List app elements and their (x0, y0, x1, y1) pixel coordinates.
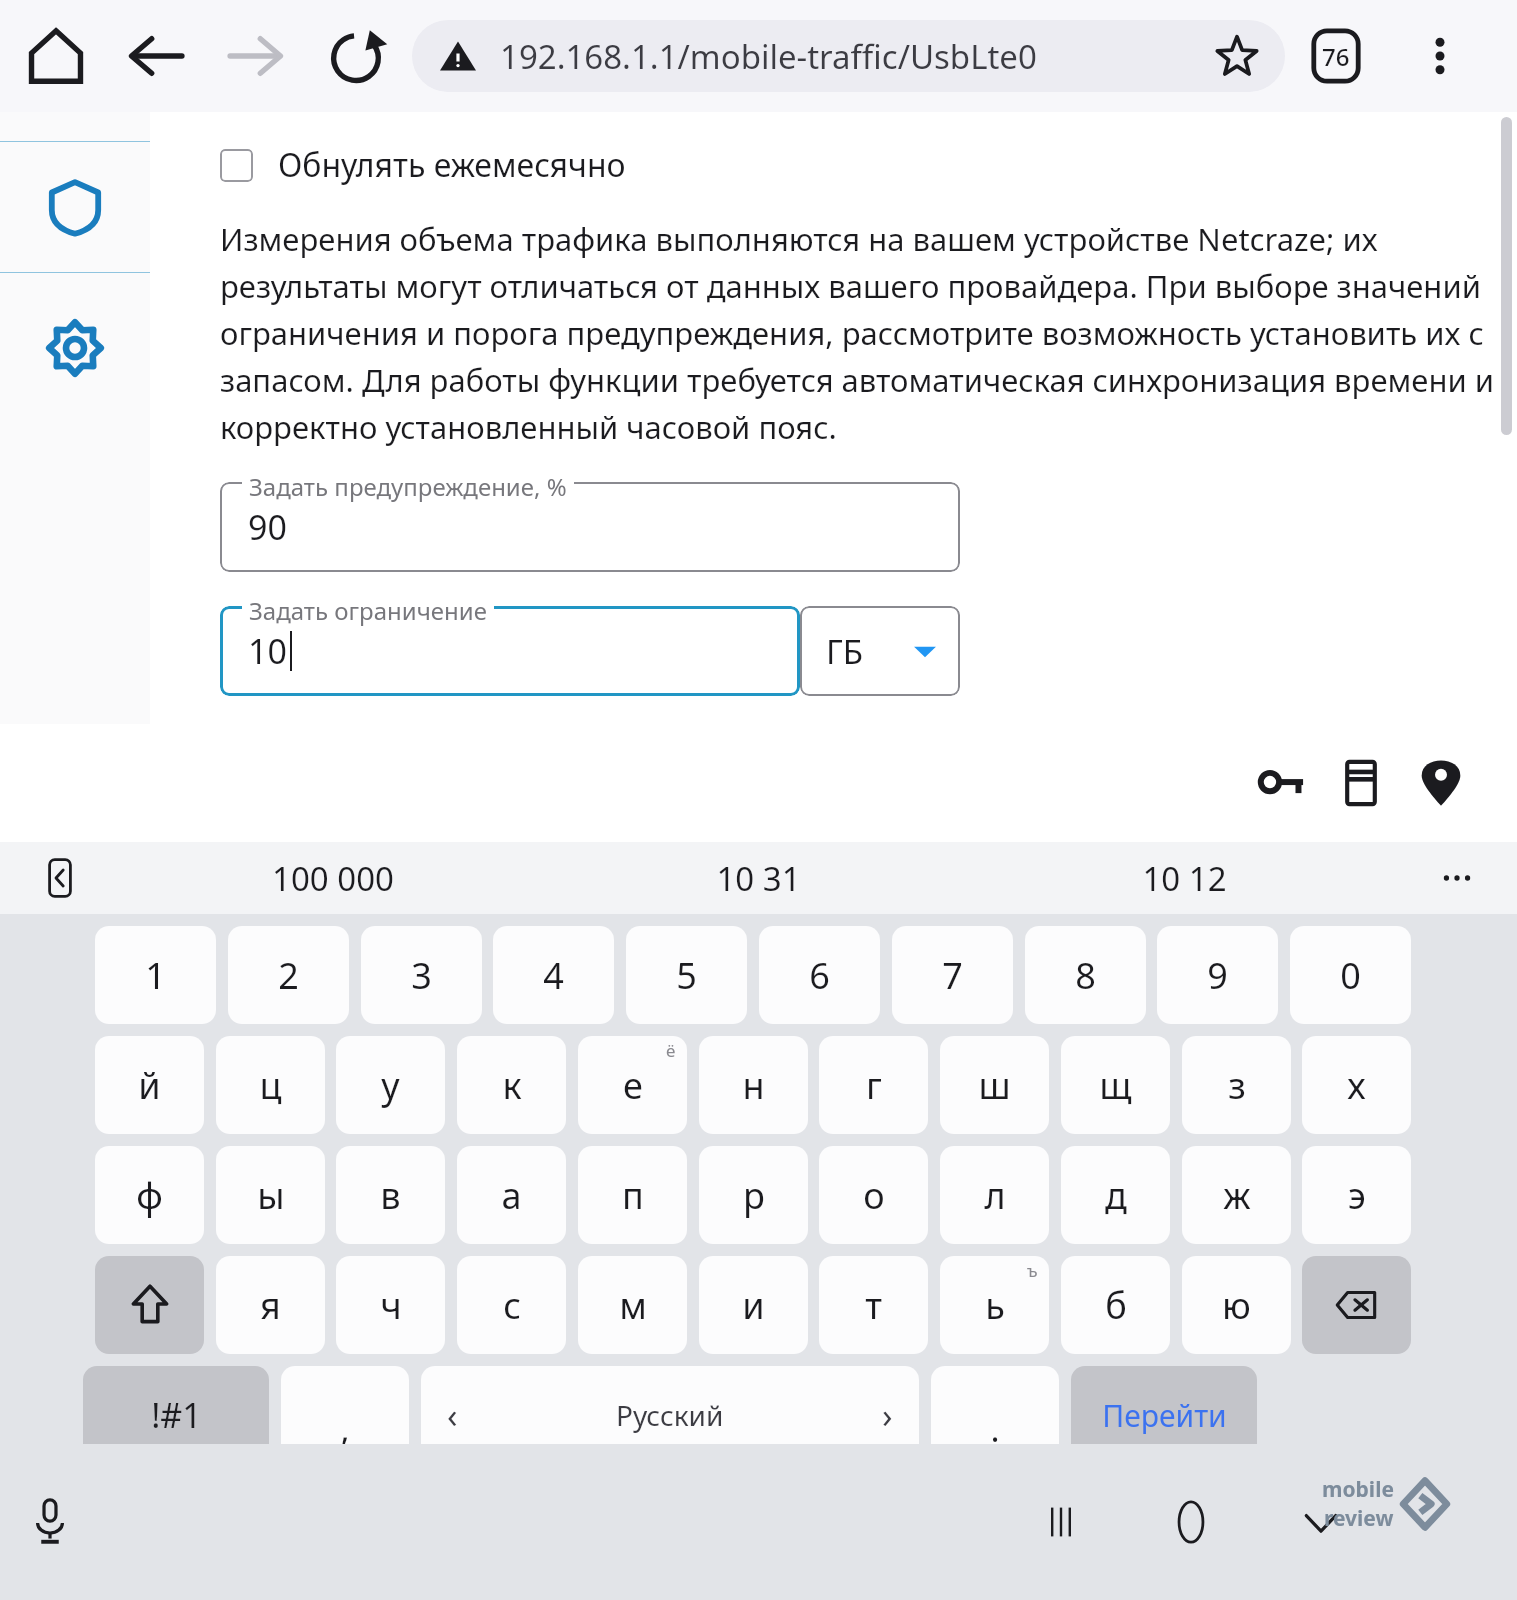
button[interactable]: Home (20, 20, 92, 92)
button[interactable]: Recent apps (1022, 1483, 1100, 1561)
button[interactable]: п (578, 1146, 687, 1244)
staticText: с (503, 1281, 521, 1330)
button[interactable]: 10 (220, 606, 800, 696)
staticText: ч (380, 1281, 402, 1330)
button[interactable]: ч (336, 1256, 445, 1354)
button[interactable]: е (578, 1036, 687, 1134)
button[interactable]: ш (940, 1036, 1049, 1134)
staticText: ю (1222, 1281, 1251, 1330)
button[interactable]: Payment methods (1321, 743, 1401, 823)
staticText: ь (985, 1281, 1005, 1330)
button[interactable]: Settings (0, 273, 150, 423)
button[interactable]: к (457, 1036, 566, 1134)
button[interactable]: Hide keyboard (1282, 1483, 1360, 1561)
button[interactable]: 6 (759, 926, 880, 1024)
button[interactable]: ы (216, 1146, 325, 1244)
button[interactable]: у (336, 1036, 445, 1134)
button[interactable]: в (336, 1146, 445, 1244)
button[interactable]: ь (940, 1256, 1049, 1354)
staticText: Обнулять ежемесячно (278, 143, 626, 187)
button[interactable]: д (1061, 1146, 1170, 1244)
staticText: р (743, 1171, 765, 1220)
button[interactable]: Forward (220, 20, 292, 92)
button[interactable]: Security (0, 142, 150, 272)
button[interactable]: щ (1061, 1036, 1170, 1134)
button[interactable]: Period (931, 1366, 1059, 1464)
staticText: 7 (942, 951, 963, 1000)
staticText: ф (136, 1171, 163, 1220)
staticText: ы (257, 1171, 285, 1220)
button[interactable]: э (1302, 1146, 1411, 1244)
button[interactable]: а (457, 1146, 566, 1244)
staticText: ‹ (447, 1392, 458, 1438)
button[interactable]: ГБ (800, 606, 960, 696)
button[interactable]: 0 (1290, 926, 1411, 1024)
button[interactable]: 10 12 (971, 842, 1397, 914)
button[interactable]: 10 31 (545, 842, 971, 914)
staticText: м (619, 1281, 647, 1330)
button[interactable]: 8 (1025, 926, 1146, 1024)
button[interactable]: м (578, 1256, 687, 1354)
button[interactable]: з (1182, 1036, 1291, 1134)
button[interactable]: More options (1410, 26, 1470, 86)
staticText: ш (978, 1061, 1011, 1110)
button[interactable]: о (819, 1146, 928, 1244)
button[interactable]: Voice input (12, 1484, 88, 1560)
button[interactable]: Bookmark (1209, 28, 1265, 84)
button[interactable]: Expand toolbar (0, 842, 120, 914)
button[interactable]: с (457, 1256, 566, 1354)
staticText: щ (1099, 1061, 1132, 1110)
staticText: ъ (1027, 1259, 1038, 1282)
button[interactable]: ф (95, 1146, 204, 1244)
button[interactable]: 7 (892, 926, 1013, 1024)
button[interactable]: Symbols (83, 1366, 269, 1464)
button[interactable]: Home (1152, 1483, 1230, 1561)
button[interactable]: Reload (320, 20, 392, 92)
button[interactable]: ц (216, 1036, 325, 1134)
button[interactable]: 4 (493, 926, 614, 1024)
button[interactable]: г (819, 1036, 928, 1134)
button[interactable]: Backspace (1302, 1256, 1411, 1354)
staticText: о (863, 1171, 885, 1220)
button[interactable]: ю (1182, 1256, 1291, 1354)
button[interactable]: р (699, 1146, 808, 1244)
button[interactable]: Addresses (1401, 743, 1481, 823)
button[interactable]: т (819, 1256, 928, 1354)
button[interactable]: Space, Russian (421, 1366, 919, 1464)
staticText: , (340, 1406, 350, 1452)
button[interactable]: Обнулять ежемесячно (220, 138, 626, 192)
button[interactable]: Go (1071, 1366, 1257, 1464)
button[interactable]: 192.168.1.1/mobile-traffic/UsbLte0 (412, 20, 1285, 92)
staticText: 2 (278, 951, 299, 1000)
button[interactable]: л (940, 1146, 1049, 1244)
button[interactable]: и (699, 1256, 808, 1354)
button[interactable]: й (95, 1036, 204, 1134)
button[interactable]: 9 (1157, 926, 1278, 1024)
staticText: 76 (1322, 40, 1350, 73)
button[interactable]: Back (120, 20, 192, 92)
button[interactable]: ж (1182, 1146, 1291, 1244)
button[interactable]: Comma (281, 1366, 409, 1464)
staticText: х (1347, 1061, 1366, 1110)
button[interactable]: я (216, 1256, 325, 1354)
staticText: 10 31 (716, 856, 801, 901)
button[interactable]: 5 (626, 926, 747, 1024)
staticText: 3 (411, 951, 432, 1000)
button[interactable]: 2 (228, 926, 349, 1024)
staticText: 8 (1075, 951, 1096, 1000)
button[interactable]: н (699, 1036, 808, 1134)
staticText: Задать предупреждение, % (249, 470, 567, 503)
staticText: у (381, 1061, 400, 1110)
button[interactable]: 3 (361, 926, 482, 1024)
button[interactable]: 100 000 (120, 842, 545, 914)
button[interactable]: Tabs (1306, 26, 1366, 86)
button[interactable]: Shift (95, 1256, 204, 1354)
button[interactable]: Passwords (1241, 743, 1321, 823)
button[interactable]: х (1302, 1036, 1411, 1134)
button[interactable]: 1 (95, 926, 216, 1024)
staticText: 0 (1340, 951, 1361, 1000)
staticText: ё (666, 1039, 676, 1062)
button[interactable]: б (1061, 1256, 1170, 1354)
button[interactable]: More suggestions (1397, 842, 1517, 914)
button[interactable]: 90 (220, 482, 960, 572)
